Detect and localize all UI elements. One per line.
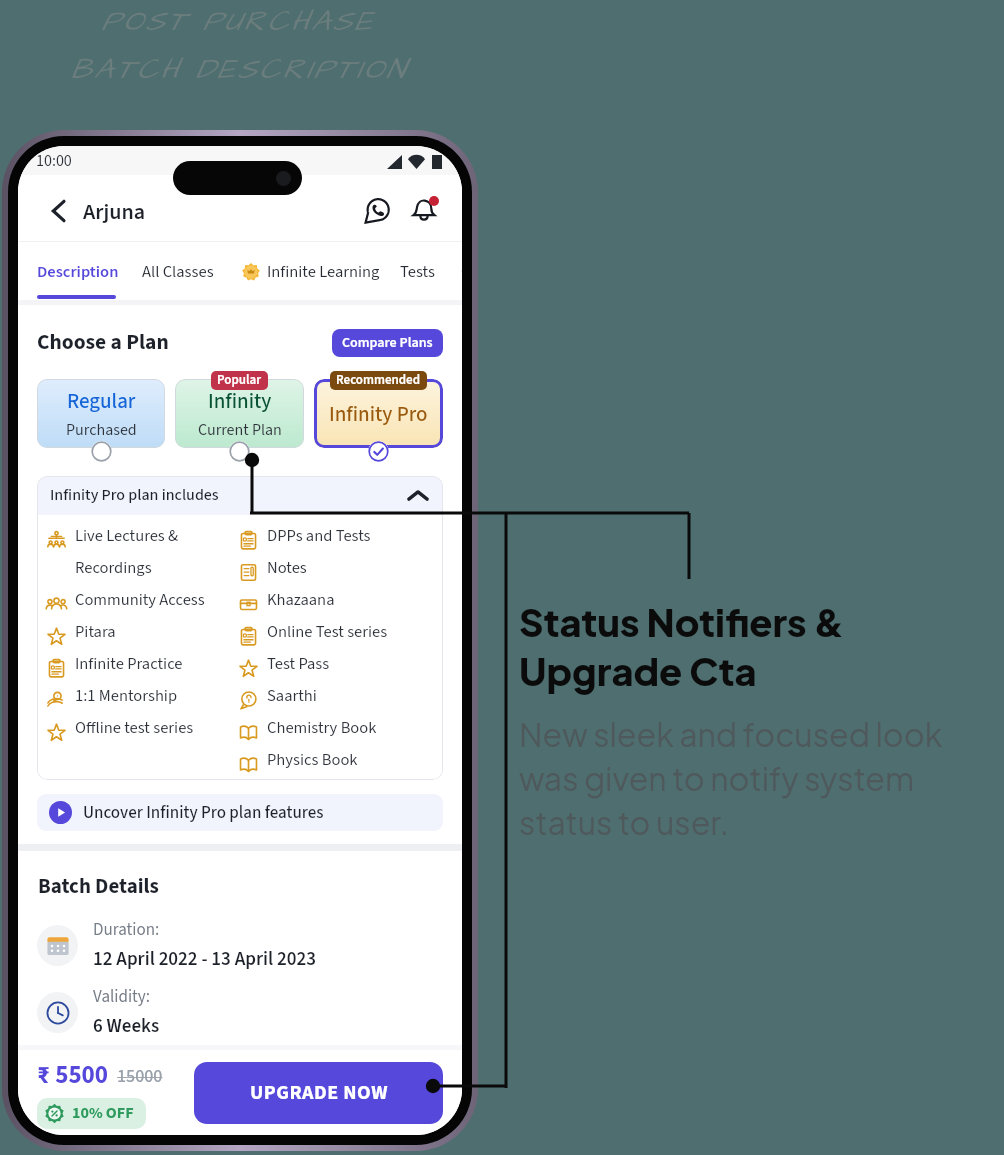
- staticText: Uncover Infinity Pro plan features: [83, 801, 324, 825]
- staticText: Infinity: [208, 386, 272, 416]
- button[interactable]: Select Infinity Pro plan: [368, 441, 389, 462]
- button[interactable]: Back: [42, 195, 74, 227]
- staticText: DPPs and Tests: [267, 524, 371, 547]
- button[interactable]: Uncover Infinity Pro plan features: [37, 794, 443, 831]
- staticText: ₹ 5500: [37, 1057, 109, 1093]
- button[interactable]: All Classes: [142, 260, 214, 283]
- button[interactable]: Description: [37, 260, 119, 283]
- staticText: Infinity Pro plan includes: [50, 484, 219, 507]
- button[interactable]: Notifications: [406, 193, 442, 229]
- staticText: Test Pass: [267, 652, 330, 675]
- staticText: New sleek and focused look was given to …: [519, 714, 943, 842]
- staticText: All Classes: [142, 260, 214, 283]
- button[interactable]: Chapters: [461, 260, 462, 283]
- button[interactable]: Infinity Pro: [314, 379, 443, 448]
- button[interactable]: WhatsApp chat: [359, 193, 395, 229]
- staticText: Pitara: [75, 620, 116, 643]
- staticText: Compare Plans: [342, 333, 433, 353]
- staticText: Duration:: [93, 918, 160, 942]
- button[interactable]: Select Regular plan: [91, 441, 112, 462]
- staticText: Description: [37, 260, 119, 283]
- button[interactable]: Infinity Pro plan includes: [37, 476, 443, 515]
- staticText: Popular: [217, 371, 262, 390]
- staticText: Online Test series: [267, 620, 388, 643]
- staticText: Khazaana: [267, 588, 335, 611]
- staticText: Arjuna: [83, 196, 146, 227]
- staticText: Live Lectures & Recordings: [75, 524, 179, 580]
- button[interactable]: UPGRADE NOW: [194, 1062, 443, 1124]
- staticText: Notes: [267, 556, 307, 579]
- staticText: Choose a Plan: [37, 327, 169, 358]
- staticText: Current Plan: [198, 419, 282, 442]
- button[interactable]: Tests: [400, 260, 435, 283]
- staticText: Validity:: [93, 985, 150, 1009]
- staticText: Purchased: [66, 419, 137, 442]
- staticText: UPGRADE NOW: [250, 1079, 388, 1107]
- staticText: Regular: [67, 386, 136, 416]
- staticText: Chemistry Book: [267, 716, 377, 739]
- staticText: Status Notifiers & Upgrade Cta: [519, 598, 845, 695]
- staticText: Tests: [400, 260, 435, 283]
- button[interactable]: Regular: [37, 379, 165, 448]
- staticText: 6 Weeks: [93, 1013, 160, 1040]
- staticText: 10% OFF: [72, 1102, 134, 1125]
- button[interactable]: Compare Plans: [332, 329, 443, 357]
- staticText: BATCH DESCRIPTION: [70, 49, 407, 89]
- staticText: Batch Details: [38, 871, 159, 901]
- staticText: POST PURCHASE: [101, 1, 375, 41]
- staticText: Infinite Practice: [75, 652, 183, 675]
- staticText: Infinity Pro: [329, 399, 428, 429]
- button[interactable]: Select Infinity plan: [229, 441, 250, 462]
- staticText: Chapters: [461, 260, 462, 283]
- staticText: 15000: [117, 1064, 163, 1090]
- staticText: Recommended: [336, 371, 421, 390]
- staticText: Saarthi: [267, 684, 317, 707]
- staticText: Physics Book: [267, 748, 358, 771]
- staticText: Infinite Learning: [267, 260, 380, 283]
- button[interactable]: Infinity: [175, 379, 304, 448]
- button[interactable]: Infinite Learning: [242, 260, 380, 283]
- staticText: 12 April 2022 - 13 April 2023: [93, 946, 316, 973]
- staticText: 1:1 Mentorship: [75, 684, 178, 707]
- staticText: 10:00: [36, 150, 72, 173]
- staticText: Community Access: [75, 588, 205, 611]
- staticText: Offline test series: [75, 716, 194, 739]
